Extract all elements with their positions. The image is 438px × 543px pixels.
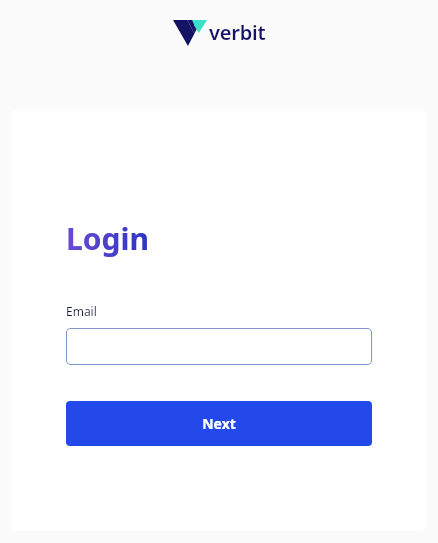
button[interactable]: Email input field	[66, 328, 372, 365]
staticText: verbit	[209, 19, 266, 46]
staticText: Login	[66, 218, 149, 259]
staticText: Email	[66, 303, 97, 319]
button[interactable]: Next	[66, 401, 372, 446]
staticText: Next	[202, 414, 236, 433]
